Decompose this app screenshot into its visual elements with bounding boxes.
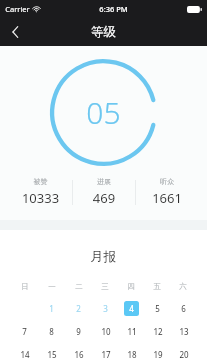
- button[interactable]: 听众: [136, 177, 198, 207]
- button[interactable]: 6: [176, 301, 191, 316]
- button[interactable]: 9: [71, 324, 86, 339]
- button[interactable]: 7: [17, 324, 32, 339]
- staticText: 20: [179, 349, 189, 360]
- button[interactable]: 11: [124, 324, 139, 339]
- staticText: 469: [73, 189, 135, 207]
- staticText: 18: [127, 349, 137, 360]
- staticText: 5: [155, 303, 160, 314]
- button[interactable]: 18: [124, 347, 139, 362]
- staticText: 等级: [91, 24, 116, 40]
- staticText: 二: [75, 282, 83, 291]
- staticText: 3: [103, 303, 108, 314]
- staticText: 05: [86, 92, 121, 133]
- staticText: 19: [153, 349, 163, 360]
- button[interactable]: 进展: [73, 177, 135, 207]
- staticText: 五: [153, 282, 161, 291]
- button[interactable]: 13: [176, 324, 191, 339]
- staticText: 16: [74, 349, 84, 360]
- button[interactable]: 5: [150, 301, 165, 316]
- staticText: 被赞: [9, 177, 72, 186]
- staticText: 日: [21, 282, 29, 291]
- staticText: 12: [153, 326, 163, 337]
- button[interactable]: 16: [71, 347, 86, 362]
- staticText: 8: [49, 326, 54, 337]
- staticText: Carrier: [5, 4, 30, 14]
- button[interactable]: 20: [176, 347, 191, 362]
- button[interactable]: 3: [98, 301, 113, 316]
- staticText: 11: [127, 326, 137, 337]
- staticText: 1: [49, 303, 54, 314]
- staticText: 4: [129, 303, 134, 314]
- button[interactable]: 14: [17, 347, 32, 362]
- staticText: 听众: [136, 177, 198, 186]
- staticText: 1661: [136, 189, 198, 207]
- button[interactable]: 8: [44, 324, 59, 339]
- staticText: 一: [48, 282, 56, 291]
- button[interactable]: 被赞: [9, 177, 72, 207]
- staticText: 7: [22, 326, 27, 337]
- button[interactable]: Back: [0, 18, 30, 46]
- staticText: 六: [179, 282, 187, 291]
- staticText: 2: [76, 303, 81, 314]
- button[interactable]: 4: [124, 301, 139, 316]
- staticText: 四: [127, 282, 135, 291]
- button[interactable]: 2: [71, 301, 86, 316]
- staticText: 17: [101, 349, 111, 360]
- button[interactable]: 1: [44, 301, 59, 316]
- staticText: 13: [179, 326, 189, 337]
- button[interactable]: 12: [150, 324, 165, 339]
- staticText: 进展: [73, 177, 135, 186]
- button[interactable]: 15: [44, 347, 59, 362]
- staticText: 6:36 PM: [99, 4, 128, 14]
- staticText: 月报: [0, 248, 207, 264]
- staticText: 三: [101, 282, 109, 291]
- staticText: 15: [47, 349, 57, 360]
- staticText: 9: [76, 326, 81, 337]
- staticText: 14: [20, 349, 30, 360]
- staticText: 6: [181, 303, 186, 314]
- staticText: 10: [101, 326, 111, 337]
- button[interactable]: 17: [98, 347, 113, 362]
- staticText: 10333: [9, 189, 72, 207]
- button[interactable]: 10: [98, 324, 113, 339]
- button[interactable]: 19: [150, 347, 165, 362]
